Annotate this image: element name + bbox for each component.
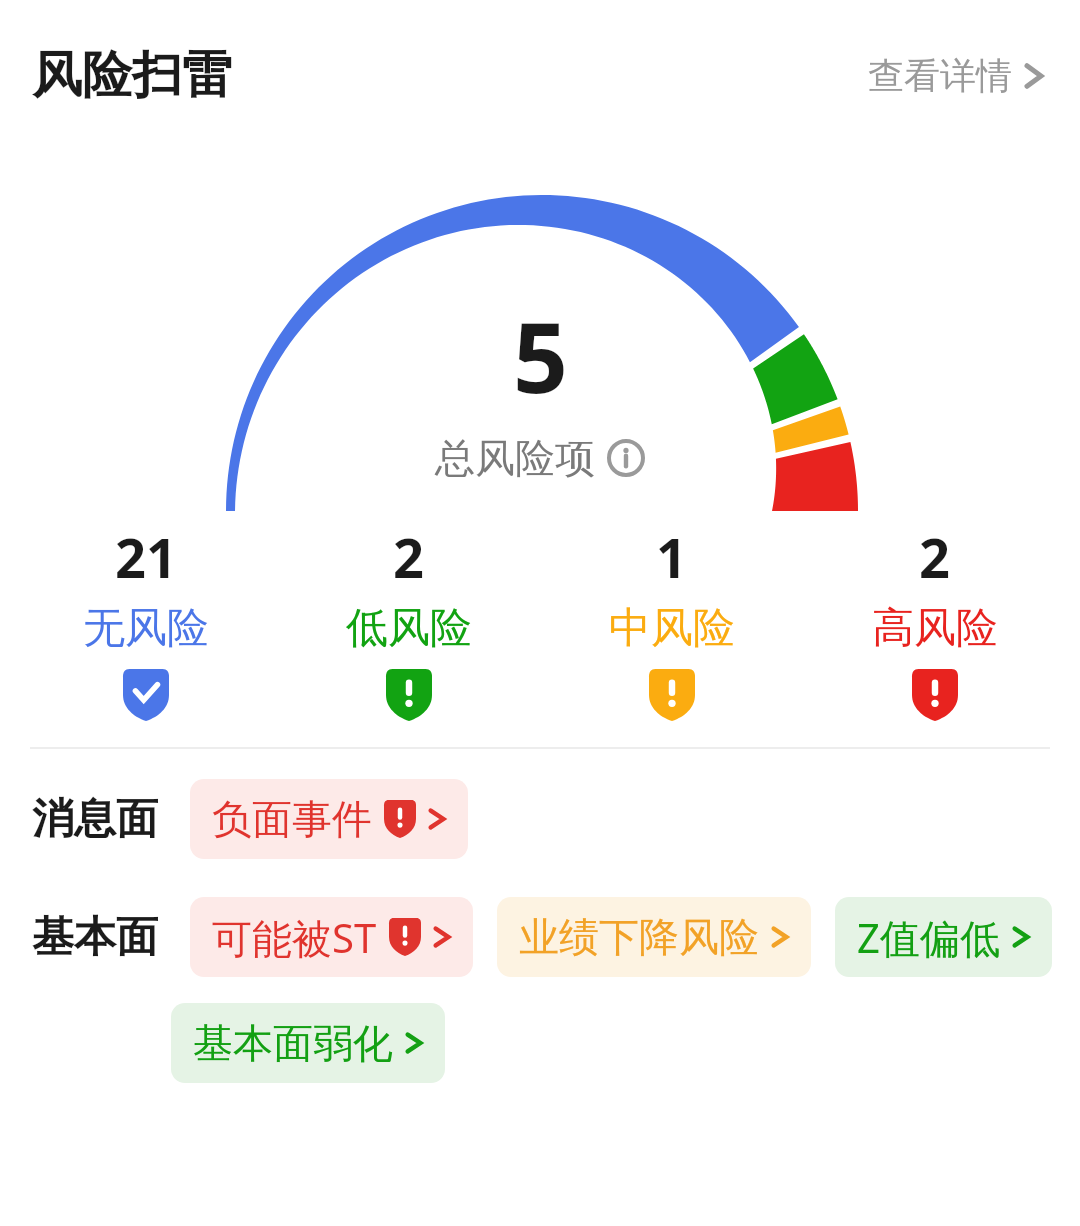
- staticText: 业绩下降风险: [519, 912, 759, 962]
- staticText: 中风险: [609, 602, 735, 655]
- staticText: 无风险: [83, 602, 209, 655]
- button[interactable]: Z值偏低: [835, 897, 1052, 977]
- staticText: 21: [115, 520, 177, 594]
- staticText: 查看详情: [868, 53, 1012, 98]
- button[interactable]: 负面事件: [190, 779, 468, 859]
- staticText: 高风险: [872, 602, 998, 655]
- staticText: 2: [393, 520, 424, 594]
- button[interactable]: 1: [540, 520, 803, 721]
- button[interactable]: 2: [277, 520, 540, 721]
- staticText: 2: [919, 520, 950, 594]
- staticText: 负面事件: [212, 794, 372, 844]
- button[interactable]: 可能被ST: [190, 897, 473, 977]
- staticText: 5: [513, 290, 568, 421]
- button[interactable]: 业绩下降风险: [497, 897, 811, 977]
- other: Info: [607, 439, 645, 477]
- staticText: 1: [656, 520, 687, 594]
- button[interactable]: 2: [803, 520, 1066, 721]
- staticText: 可能被ST: [212, 910, 377, 965]
- staticText: 消息面: [32, 793, 158, 846]
- staticText: 基本面: [32, 911, 158, 964]
- staticText: Z值偏低: [857, 910, 1000, 965]
- button[interactable]: 21: [14, 520, 277, 721]
- staticText: 基本面弱化: [193, 1018, 393, 1068]
- staticText: 低风险: [346, 602, 472, 655]
- button[interactable]: 查看详情: [862, 47, 1050, 104]
- button[interactable]: 基本面弱化: [171, 1003, 445, 1083]
- staticText: 风险扫雷: [32, 44, 232, 107]
- staticText: 总风险项: [435, 433, 595, 483]
